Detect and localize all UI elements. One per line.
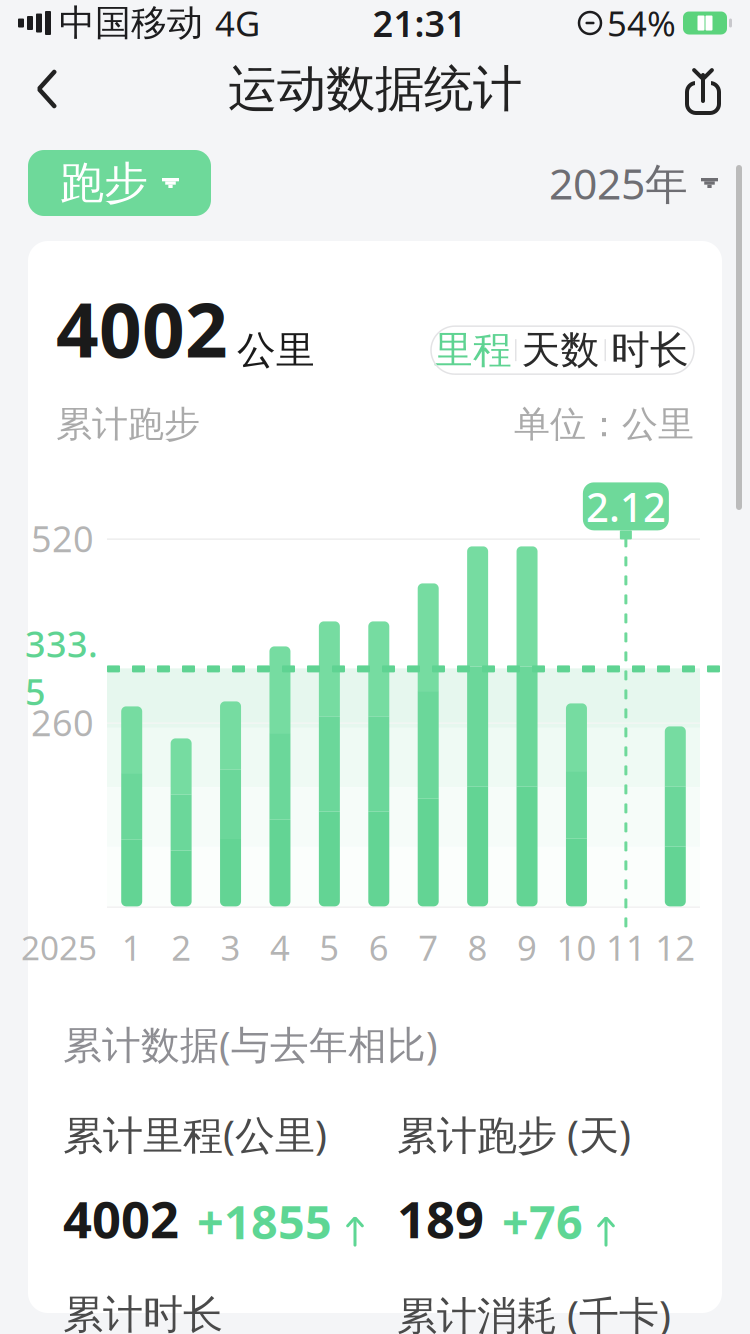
staticText: 12 — [655, 924, 695, 970]
staticText: 2025年 — [549, 155, 688, 211]
button[interactable]: 2025年 — [545, 150, 722, 216]
staticText: 4G — [215, 0, 260, 46]
staticText: 4 — [270, 924, 290, 970]
button[interactable]: 跑步 — [28, 150, 211, 216]
staticText: 4002 — [63, 1185, 179, 1252]
staticText: 累计时长 — [63, 1290, 223, 1334]
staticText: 333.5 — [25, 620, 98, 715]
button[interactable]: 时长 — [606, 326, 694, 374]
staticText: 260 — [31, 698, 94, 746]
staticText: 21:31 — [372, 0, 466, 47]
staticText: +1855 — [197, 1190, 332, 1252]
staticText: 11 — [606, 924, 646, 970]
staticText: 天数 — [521, 326, 599, 374]
staticText: 2025 — [21, 925, 97, 969]
staticText: 时长 — [611, 326, 689, 374]
staticText: 7 — [418, 924, 438, 970]
staticText: 2.12 — [586, 480, 666, 533]
staticText: +76 — [502, 1190, 583, 1252]
staticText: 8 — [468, 924, 488, 970]
staticText: 520 — [31, 514, 94, 562]
staticText: 单位：公里 — [514, 402, 694, 446]
staticText: 里程 — [434, 326, 512, 374]
staticText: 公里 — [237, 327, 315, 374]
button[interactable]: 里程 — [431, 326, 515, 374]
staticText: 中国移动 — [59, 1, 203, 45]
button[interactable]: 分享 — [666, 52, 740, 126]
staticText: 10 — [556, 924, 596, 970]
staticText: 3 — [220, 924, 240, 970]
staticText: 累计里程(公里) — [63, 1108, 327, 1161]
staticText: 累计跑步 — [56, 402, 200, 446]
staticText: 4002 — [56, 279, 228, 378]
button[interactable]: 天数 — [516, 326, 604, 374]
staticText: 9 — [517, 924, 537, 970]
staticText: 1 — [122, 924, 142, 970]
button[interactable]: 返回 — [10, 52, 84, 126]
staticText: 54% — [607, 0, 676, 46]
staticText: 跑步 — [60, 156, 148, 210]
staticText: 累计数据(与去年相比) — [63, 1018, 438, 1070]
staticText: 累计消耗 (千卡) — [397, 1288, 671, 1334]
staticText: 2 — [171, 924, 191, 970]
staticText: 累计跑步 (天) — [397, 1108, 631, 1161]
staticText: 运动数据统计 — [228, 59, 522, 119]
staticText: 189 — [397, 1185, 484, 1252]
staticText: 5 — [319, 924, 339, 970]
staticText: 6 — [369, 924, 389, 970]
